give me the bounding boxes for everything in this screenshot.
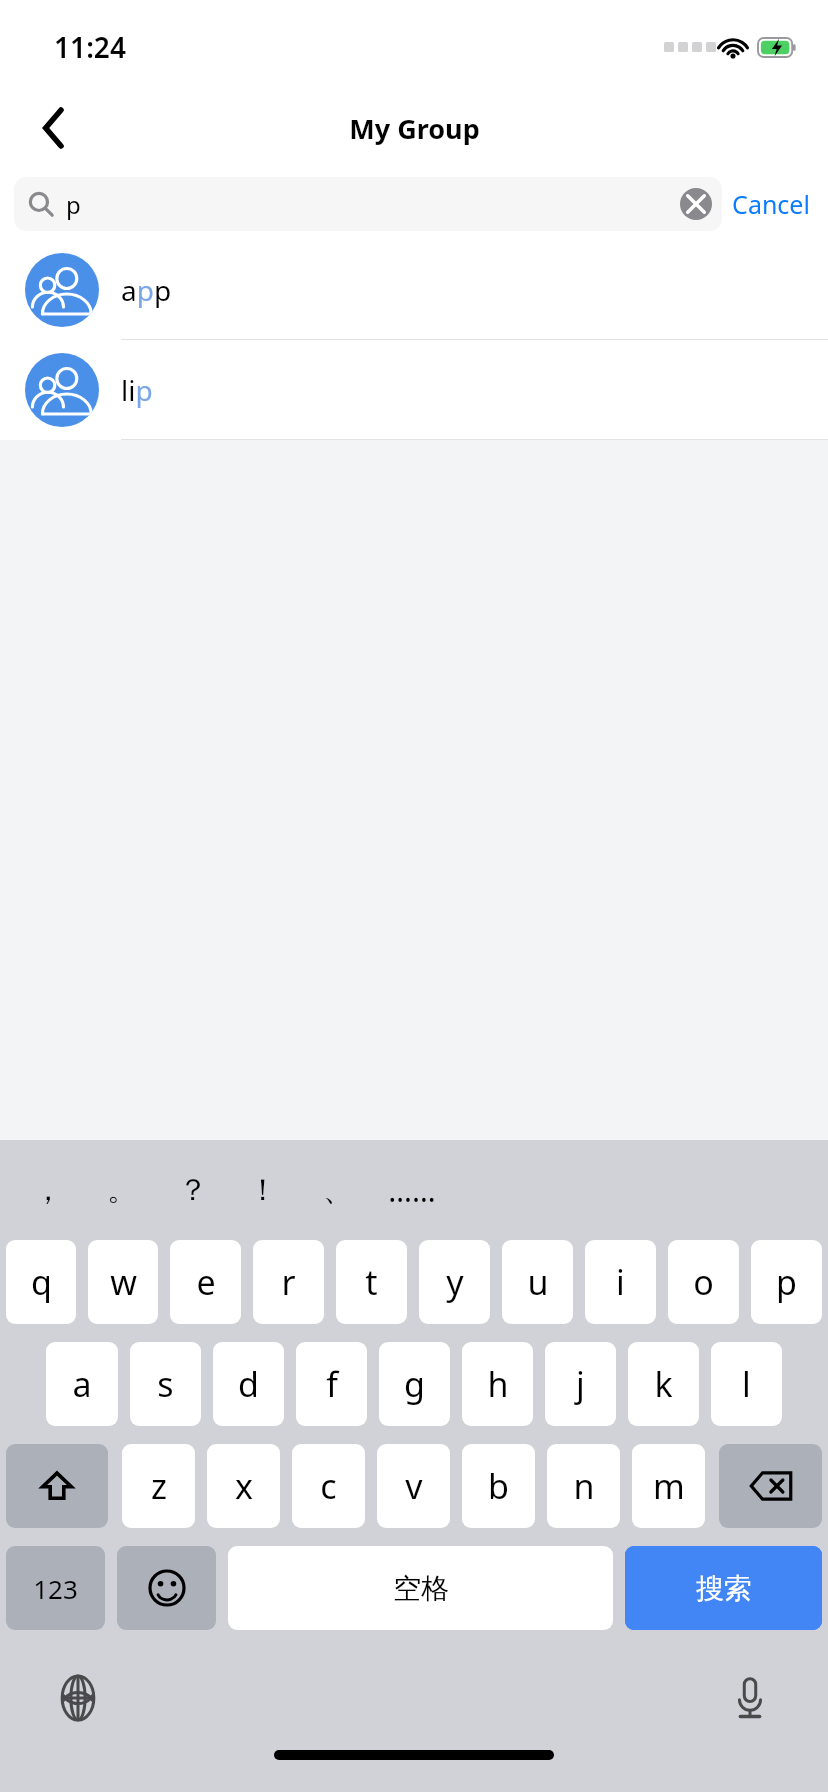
button[interactable]: z xyxy=(122,1444,195,1528)
staticText: ！ xyxy=(248,1171,278,1209)
staticText: r xyxy=(281,1259,296,1305)
staticText: d xyxy=(238,1361,259,1407)
staticText: z xyxy=(151,1463,167,1509)
button[interactable]: l xyxy=(711,1342,782,1426)
button[interactable]: a xyxy=(46,1342,118,1426)
button[interactable]: s xyxy=(130,1342,201,1426)
button[interactable]: e xyxy=(170,1240,241,1324)
button[interactable]: 空格 xyxy=(228,1546,613,1630)
staticText: l xyxy=(742,1361,751,1407)
button[interactable]: ？ xyxy=(158,1155,228,1225)
button[interactable]: r xyxy=(253,1240,324,1324)
button[interactable]: Cancel xyxy=(732,177,810,231)
staticText: Cancel xyxy=(732,187,810,221)
staticText: s xyxy=(157,1361,174,1407)
button[interactable]: h xyxy=(462,1342,533,1426)
button[interactable]: o xyxy=(668,1240,739,1324)
button[interactable]: p xyxy=(751,1240,822,1324)
button[interactable]: d xyxy=(213,1342,284,1426)
staticText: u xyxy=(527,1259,549,1305)
staticText: y xyxy=(446,1259,464,1305)
button[interactable]: v xyxy=(377,1444,450,1528)
button[interactable]: ！ xyxy=(228,1155,298,1225)
staticText: 。 xyxy=(107,1171,137,1209)
staticText: a xyxy=(72,1361,92,1407)
staticText: h xyxy=(487,1361,509,1407)
button[interactable]: Clear text xyxy=(674,182,718,226)
button[interactable]: c xyxy=(292,1444,365,1528)
button[interactable]: f xyxy=(296,1342,367,1426)
button[interactable]: n xyxy=(547,1444,620,1528)
button[interactable]: Backspace xyxy=(719,1444,822,1528)
button[interactable]: Dictate xyxy=(718,1666,782,1730)
staticText: 空格 xyxy=(393,1571,449,1606)
button[interactable]: Back xyxy=(24,98,84,158)
button[interactable]: b xyxy=(462,1444,535,1528)
staticText: lip xyxy=(121,371,153,409)
staticText: …… xyxy=(388,1170,436,1211)
staticText: m xyxy=(653,1463,685,1509)
staticText: f xyxy=(326,1361,338,1407)
staticText: 搜索 xyxy=(696,1571,752,1606)
staticText: i xyxy=(616,1259,625,1305)
staticText: o xyxy=(693,1259,714,1305)
staticText: p xyxy=(776,1259,797,1305)
button[interactable]: g xyxy=(379,1342,450,1426)
staticText: w xyxy=(110,1259,137,1305)
staticText: 、 xyxy=(323,1171,353,1209)
button[interactable]: Change keyboard xyxy=(46,1666,110,1730)
button[interactable]: ， xyxy=(13,1155,83,1225)
staticText: v xyxy=(405,1463,423,1509)
button[interactable]: 搜索 xyxy=(625,1546,822,1630)
staticText: p xyxy=(66,188,81,221)
button[interactable]: y xyxy=(419,1240,490,1324)
staticText: 123 xyxy=(33,1571,78,1606)
button[interactable]: Shift xyxy=(6,1444,108,1528)
button[interactable]: m xyxy=(632,1444,705,1528)
staticText: ， xyxy=(33,1171,63,1209)
button[interactable]: 123 xyxy=(6,1546,105,1630)
staticText: c xyxy=(320,1463,337,1509)
staticText: x xyxy=(235,1463,253,1509)
button[interactable]: p xyxy=(14,177,722,231)
button[interactable]: app xyxy=(0,240,828,340)
button[interactable]: x xyxy=(207,1444,280,1528)
staticText: n xyxy=(573,1463,595,1509)
staticText: g xyxy=(404,1361,425,1407)
staticText: ？ xyxy=(178,1171,208,1209)
staticText: q xyxy=(31,1259,52,1305)
staticText: t xyxy=(365,1259,378,1305)
staticText: My Group xyxy=(349,110,480,147)
staticText: b xyxy=(488,1463,509,1509)
staticText: e xyxy=(196,1259,216,1305)
button[interactable]: 、 xyxy=(303,1155,373,1225)
button[interactable]: u xyxy=(502,1240,573,1324)
staticText: j xyxy=(576,1361,585,1407)
button[interactable]: i xyxy=(585,1240,656,1324)
staticText: k xyxy=(654,1361,673,1407)
staticText: 11:24 xyxy=(54,28,126,66)
button[interactable]: w xyxy=(88,1240,158,1324)
button[interactable]: lip xyxy=(0,340,828,440)
button[interactable]: 。 xyxy=(87,1155,157,1225)
button[interactable]: …… xyxy=(377,1155,447,1225)
staticText: app xyxy=(121,271,172,309)
button[interactable]: q xyxy=(6,1240,76,1324)
button[interactable]: k xyxy=(628,1342,699,1426)
button[interactable]: Emoji xyxy=(117,1546,216,1630)
button[interactable]: t xyxy=(336,1240,407,1324)
button[interactable]: j xyxy=(545,1342,616,1426)
